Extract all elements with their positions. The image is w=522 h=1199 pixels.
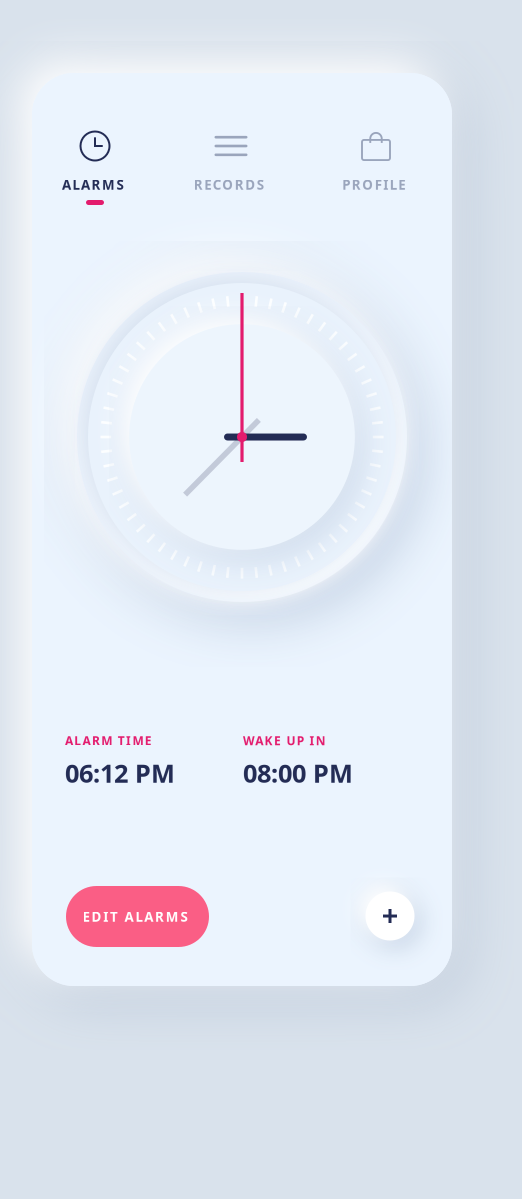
- button[interactable]: Add alarm: [365, 891, 414, 940]
- button[interactable]: PROFILE: [321, 130, 431, 205]
- staticText: ALARMS: [62, 176, 128, 193]
- staticText: ALARM TIME: [65, 732, 156, 748]
- staticText: RECORDS: [194, 176, 268, 193]
- button[interactable]: RECORDS: [176, 130, 286, 205]
- staticText: 06:12 PM: [65, 756, 175, 790]
- staticText: PROFILE: [342, 176, 410, 193]
- button[interactable]: EDIT ALARMS: [66, 886, 209, 947]
- button[interactable]: ALARMS: [40, 130, 150, 205]
- staticText: EDIT ALARMS: [83, 908, 192, 925]
- staticText: WAKE UP IN: [243, 732, 330, 748]
- staticText: 08:00 PM: [243, 756, 353, 790]
